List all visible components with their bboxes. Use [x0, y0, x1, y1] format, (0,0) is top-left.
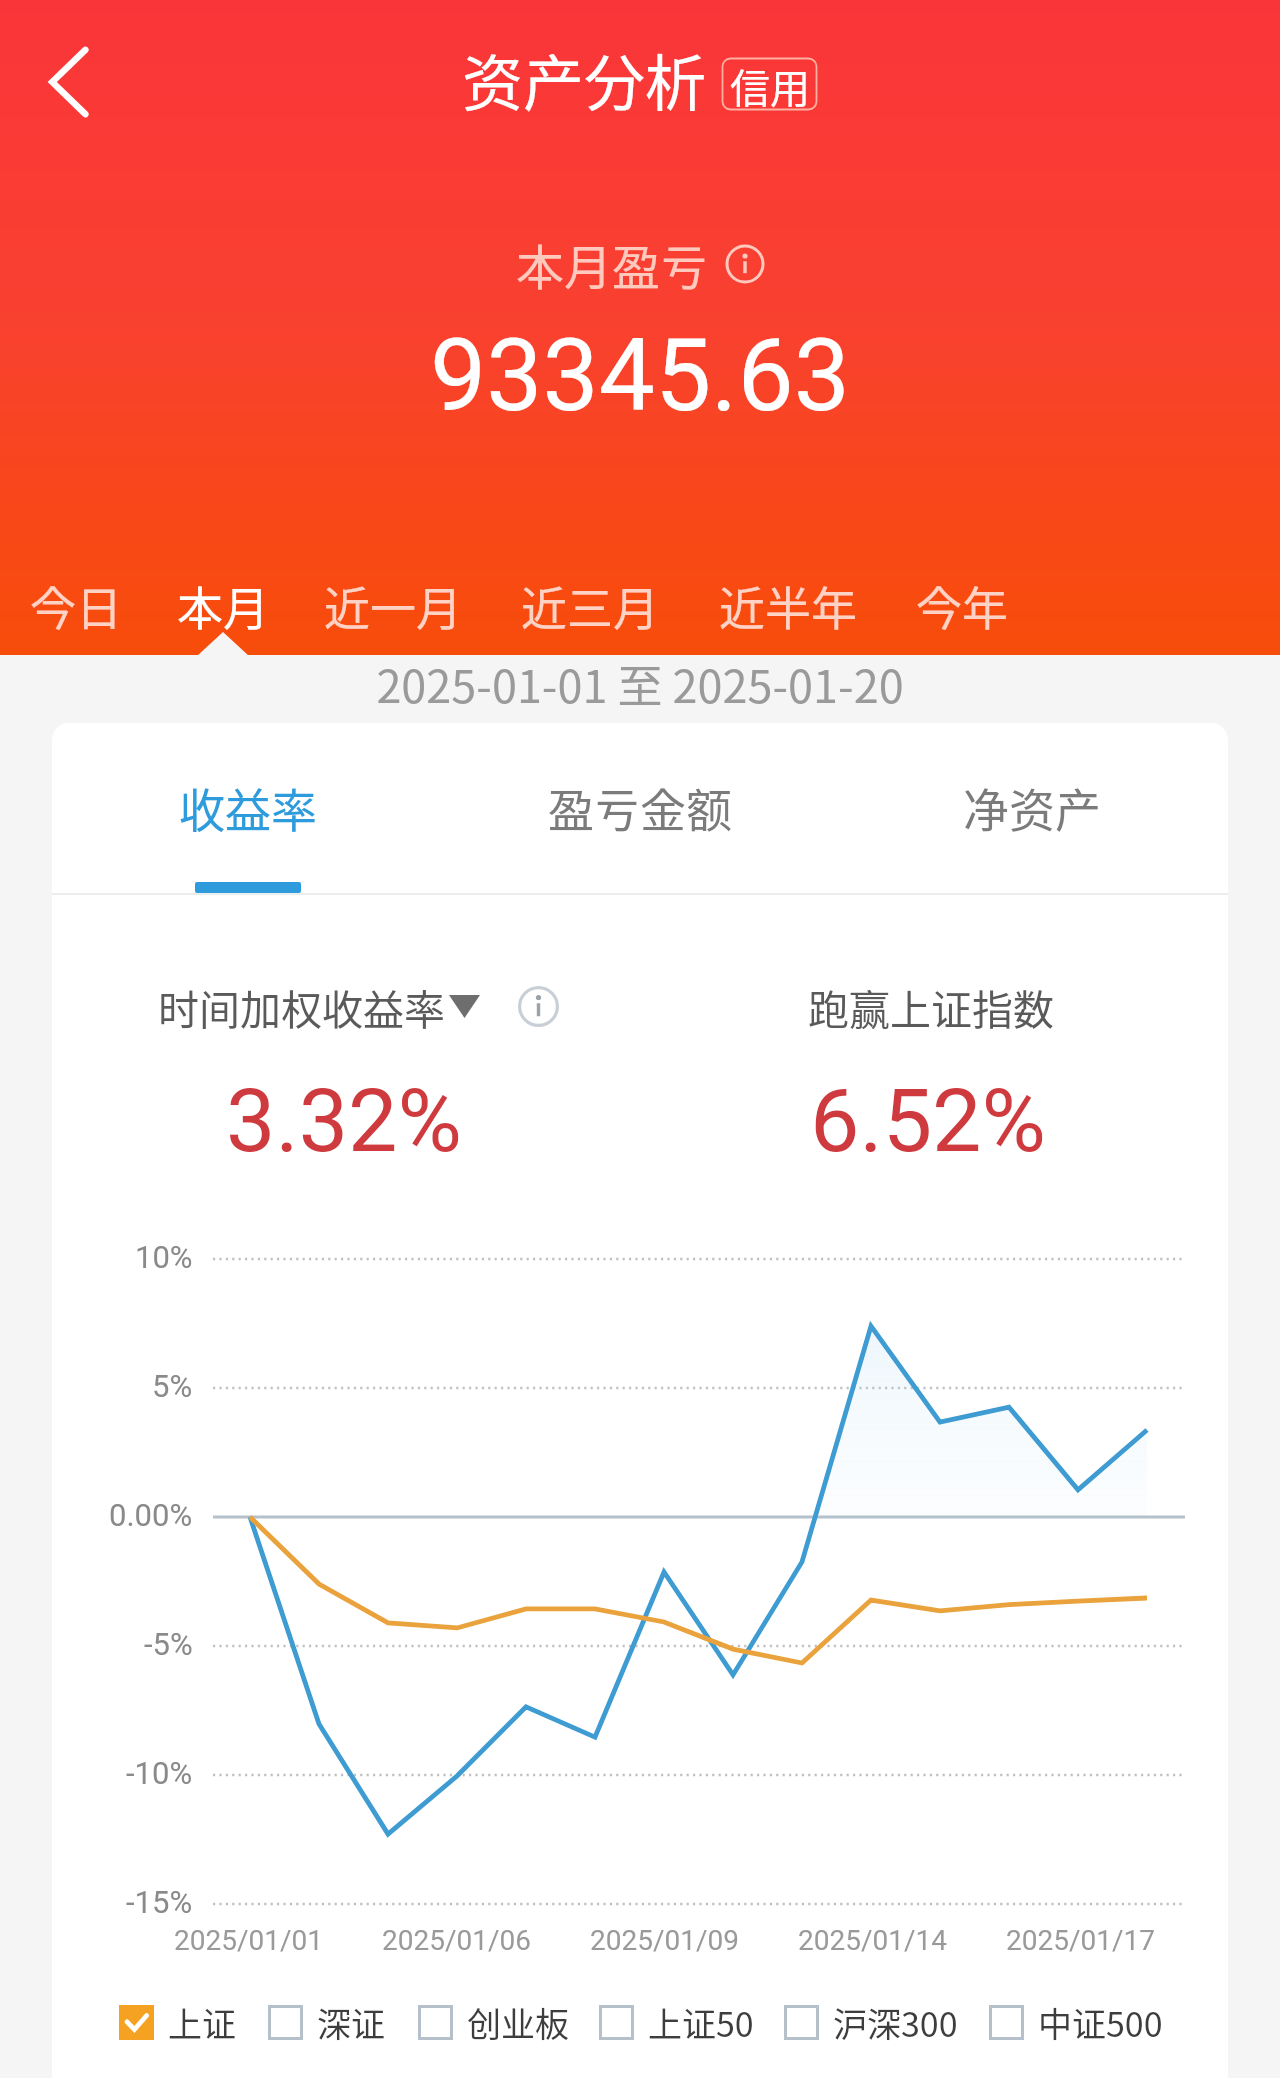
staticText: 跑赢上证指数 — [808, 977, 1054, 1036]
staticText: 10% — [135, 1239, 193, 1275]
staticText: 5% — [152, 1368, 193, 1404]
button[interactable]: 中证500 — [989, 1998, 1163, 2047]
staticText: 2025/01/01 — [174, 1924, 323, 1957]
button[interactable]: 信用 — [721, 57, 818, 111]
button[interactable]: 收益率 — [52, 723, 444, 893]
staticText: -5% — [144, 1626, 193, 1662]
button[interactable]: 创业板 — [418, 1998, 569, 2047]
staticText: 上证50 — [648, 1998, 754, 2047]
staticText: 2025/01/06 — [382, 1924, 531, 1957]
staticText: 本月盈亏 — [516, 229, 709, 299]
button[interactable]: 净资产 — [836, 723, 1228, 893]
button[interactable]: 近一月 — [324, 572, 468, 634]
button[interactable]: 盈亏金额 — [444, 723, 836, 893]
staticText: 2025/01/14 — [798, 1924, 947, 1957]
staticText: 收益率 — [179, 774, 317, 841]
button[interactable]: 上证50 — [599, 1998, 754, 2047]
button[interactable]: 今日 — [30, 572, 128, 634]
staticText: -10% — [126, 1755, 193, 1791]
staticText: 深证 — [317, 1998, 385, 2047]
button[interactable]: Back — [22, 34, 118, 130]
button[interactable]: 沪深300 — [784, 1998, 958, 2047]
staticText: 净资产 — [963, 774, 1101, 841]
staticText: 上证 — [168, 1998, 236, 2047]
staticText: -15% — [126, 1884, 193, 1920]
button[interactable]: 近半年 — [719, 572, 863, 634]
staticText: 沪深300 — [833, 1998, 958, 2047]
staticText: 时间加权收益率 — [158, 977, 445, 1036]
staticText: 今日 — [30, 572, 122, 634]
staticText: 0.00% — [109, 1497, 193, 1533]
staticText: 今年 — [916, 572, 1008, 634]
button[interactable]: 上证 — [119, 1998, 236, 2047]
button[interactable]: 本月 — [177, 572, 275, 634]
button[interactable]: 近三月 — [521, 572, 665, 634]
staticText: 信用 — [730, 57, 810, 111]
staticText: 3.32% — [226, 1069, 463, 1172]
button[interactable]: 今年 — [916, 572, 1014, 634]
staticText: 创业板 — [467, 1998, 569, 2047]
staticText: 2025/01/09 — [590, 1924, 739, 1957]
staticText: 6.52% — [810, 1069, 1047, 1172]
staticText: 2025/01/17 — [1006, 1924, 1155, 1957]
staticText: 资产分析 — [462, 35, 707, 123]
button[interactable]: Info — [725, 244, 765, 284]
staticText: 93345.63 — [0, 317, 1280, 434]
staticText: 本月 — [177, 572, 269, 634]
button[interactable]: 深证 — [268, 1998, 385, 2047]
staticText: 近三月 — [521, 572, 659, 634]
button[interactable]: Info — [518, 986, 559, 1027]
staticText: 2025-01-01 至 2025-01-20 — [0, 651, 1280, 716]
staticText: 近半年 — [719, 572, 857, 634]
staticText: 近一月 — [324, 572, 462, 634]
staticText: 中证500 — [1038, 1998, 1163, 2047]
staticText: 盈亏金额 — [548, 774, 732, 841]
